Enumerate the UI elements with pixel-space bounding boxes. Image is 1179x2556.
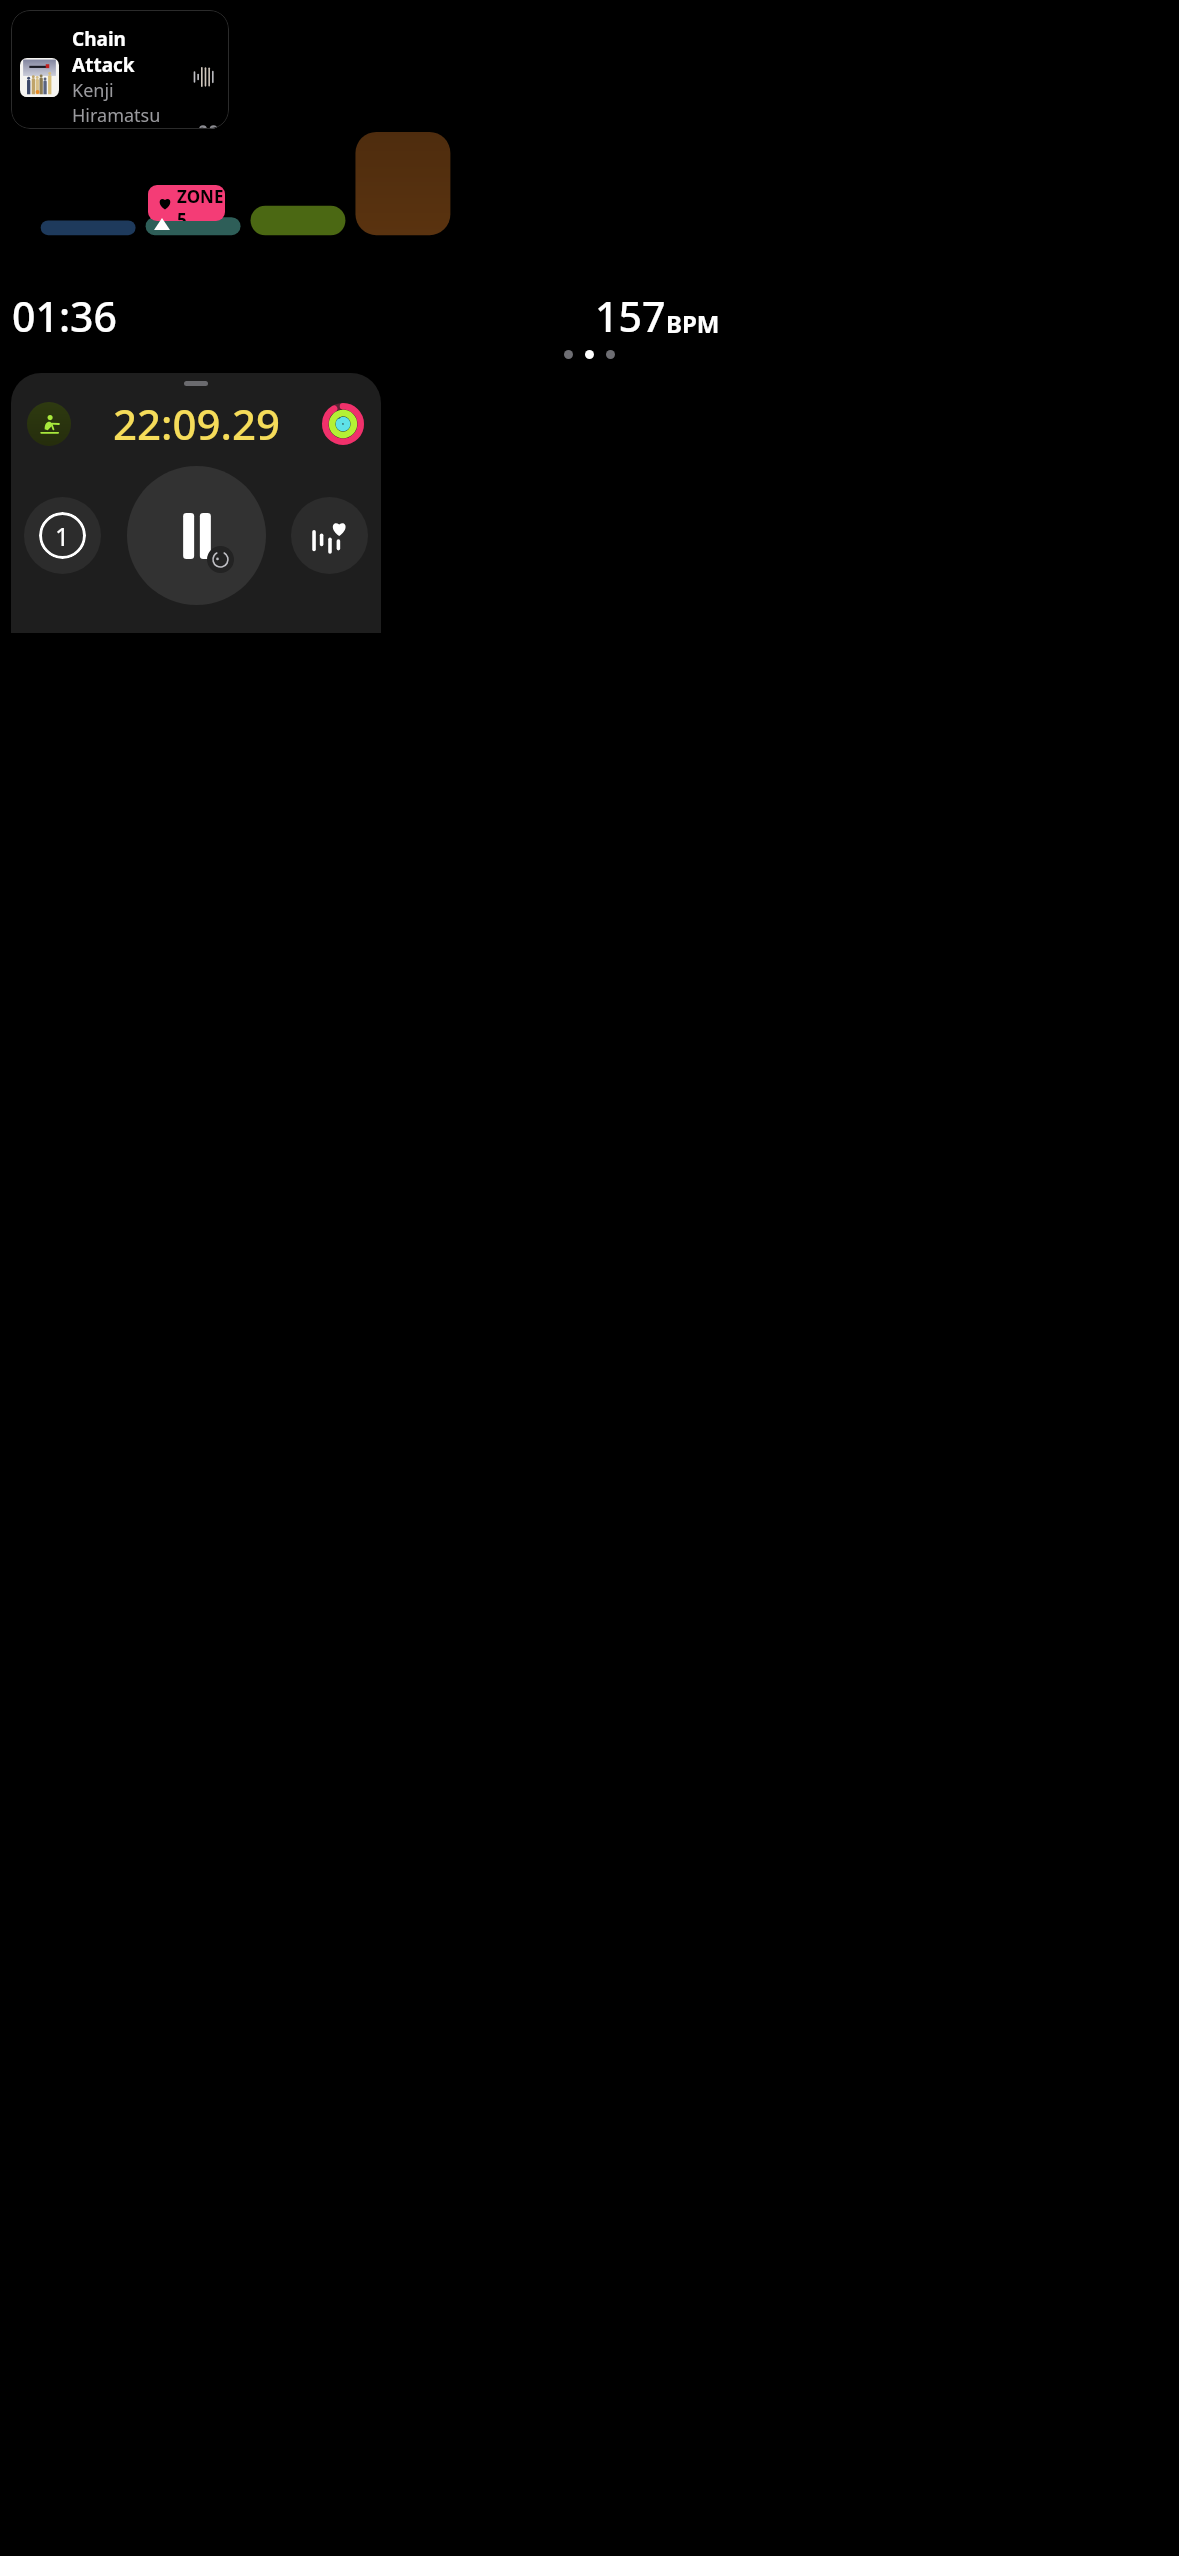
staticText: 01:36 (12, 288, 117, 343)
button[interactable]: Water lock (207, 546, 234, 573)
button[interactable] (606, 350, 615, 359)
button[interactable]: AirPlay output (191, 64, 217, 90)
staticText: ZONE 5 (177, 185, 225, 221)
button[interactable]: Workout type (27, 402, 71, 446)
button[interactable] (585, 350, 594, 359)
staticText: BPM (666, 307, 720, 340)
button[interactable]: Activity rings (321, 402, 365, 446)
staticText: 22:09.29 (113, 395, 280, 452)
button[interactable]: Chain Attack (11, 10, 229, 129)
staticText: Chain Attack (72, 26, 187, 78)
button[interactable] (564, 350, 573, 359)
button[interactable]: 01:36 (12, 288, 589, 343)
button[interactable]: ZONE 5 (0, 132, 1179, 252)
button[interactable]: Lap 1 (24, 497, 101, 574)
button[interactable]: ZONE 5 (148, 185, 225, 221)
staticText: 157 (595, 288, 666, 343)
staticText: 1 (55, 519, 70, 553)
staticText: Kenji Hiramatsu (72, 78, 187, 128)
button[interactable]: Heart rate (291, 497, 368, 574)
button[interactable]: 157 (595, 288, 1179, 343)
button[interactable]: Pause workout (127, 466, 266, 605)
